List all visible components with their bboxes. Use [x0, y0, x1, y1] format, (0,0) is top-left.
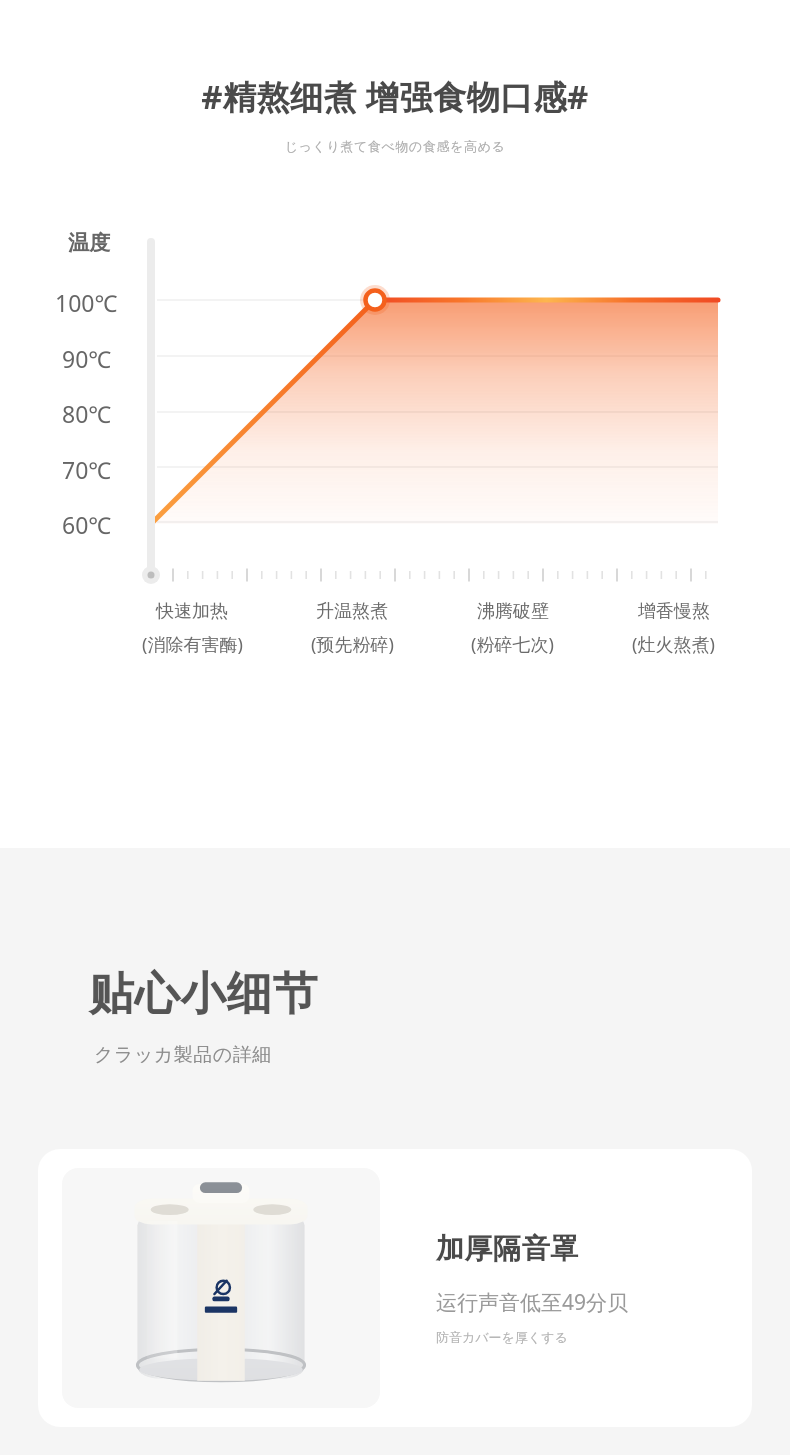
other: Blender jar with sound cover	[126, 1176, 316, 1401]
staticText: クラッカ製品の詳細	[94, 1043, 272, 1067]
staticText: 快速加热	[156, 600, 228, 623]
staticText: 贴心小细节	[88, 966, 318, 1023]
staticText: 沸腾破壁	[477, 600, 549, 623]
staticText: 升温熬煮	[316, 600, 388, 623]
staticText: 增香慢熬	[638, 600, 710, 623]
staticText: 防音カバーを厚くする	[436, 1329, 568, 1345]
staticText: 加厚隔音罩	[436, 1231, 579, 1266]
staticText: 运行声音低至49分贝	[436, 1288, 629, 1317]
button[interactable]: Blender jar with sound cover	[38, 1149, 752, 1427]
staticText: 90℃	[62, 343, 112, 374]
staticText: じっくり煮て食べ物の食感を高める	[0, 138, 790, 154]
staticText: 温度	[68, 230, 110, 256]
staticText: (消除有害酶)	[142, 632, 243, 657]
staticText: 60℃	[62, 509, 112, 540]
staticText: (预先粉碎)	[311, 632, 394, 657]
staticText: #精熬细煮 增强食物口感#	[0, 74, 790, 119]
staticText: (灶火熬煮)	[632, 632, 715, 657]
staticText: (粉碎七次)	[471, 632, 554, 657]
staticText: 100℃	[55, 287, 118, 318]
staticText: 80℃	[62, 398, 112, 429]
staticText: 70℃	[62, 454, 112, 485]
